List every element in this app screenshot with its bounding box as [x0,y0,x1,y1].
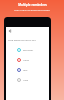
button[interactable]: Task [6,65,49,75]
staticText: Note [23,79,29,82]
staticText: Reminder [23,49,34,52]
button[interactable]: Alarm [6,55,49,65]
staticText: Multiple reminders [18,3,47,7]
button[interactable]: Reminder [6,45,49,55]
staticText: Task [23,69,28,72]
staticText: Alarm [23,59,30,62]
button[interactable]: Note [6,75,49,85]
staticText: What would you like to do? [8,39,36,42]
staticText: Don't miss an important event [14,8,50,11]
button[interactable]: Back [6,27,49,35]
